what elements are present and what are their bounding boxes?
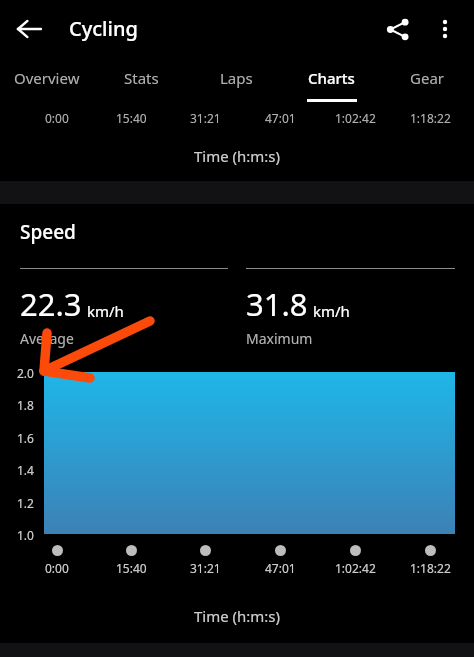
staticText: Charts [308, 68, 355, 88]
staticText: Cycling [69, 15, 138, 42]
staticText: 1:02:42 [335, 110, 376, 126]
staticText: 1.0 [17, 527, 34, 541]
staticText: 0:00 [45, 110, 69, 126]
staticText: km/h [87, 301, 124, 321]
button[interactable]: Share [373, 5, 421, 53]
staticText: 47:01 [265, 560, 296, 576]
staticText: 1.4 [17, 462, 34, 476]
staticText: 47:01 [265, 110, 296, 126]
staticText: 1.6 [17, 430, 34, 444]
staticText: 1.8 [17, 397, 34, 411]
button[interactable]: Laps [189, 57, 284, 98]
staticText: 31:21 [190, 560, 221, 576]
staticText: 1:18:22 [410, 110, 451, 126]
staticText: Speed [20, 219, 76, 245]
staticText: Laps [220, 68, 253, 88]
staticText: 15:40 [116, 110, 147, 126]
staticText: Overview [14, 68, 80, 88]
button[interactable]: Back [5, 5, 53, 53]
staticText: Time (h:m:s) [0, 606, 474, 626]
staticText: 15:40 [116, 560, 147, 576]
staticText: km/h [313, 301, 350, 321]
staticText: 22.3 [20, 283, 82, 325]
button[interactable]: More options [421, 5, 469, 53]
button[interactable]: Charts [284, 57, 379, 98]
staticText: 1:02:42 [335, 560, 376, 576]
button[interactable]: Stats [94, 57, 189, 98]
staticText: Gear [410, 68, 444, 88]
staticText: 1.2 [17, 495, 34, 509]
staticText: 31:21 [190, 110, 221, 126]
button[interactable]: Overview [0, 57, 94, 98]
staticText: Maximum [246, 329, 313, 348]
button[interactable]: Gear [379, 57, 474, 98]
staticText: Average [20, 329, 74, 348]
staticText: Stats [124, 68, 159, 88]
staticText: 31.8 [246, 283, 308, 325]
staticText: Time (h:m:s) [0, 146, 474, 166]
staticText: 0:00 [45, 560, 69, 576]
staticText: 2.0 [17, 365, 34, 379]
staticText: 1:18:22 [410, 560, 451, 576]
